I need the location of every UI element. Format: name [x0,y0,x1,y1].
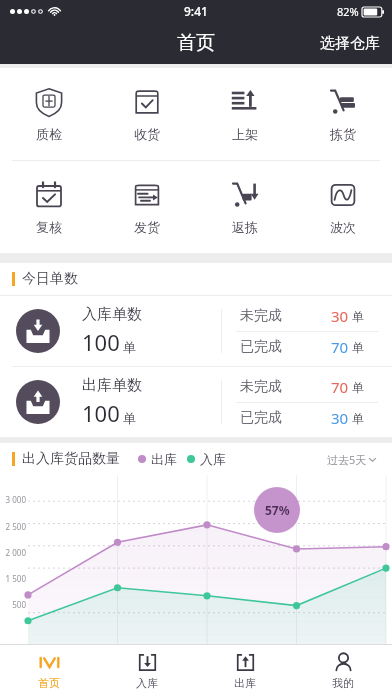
button[interactable]: 发货 [98,161,196,253]
staticText: 已完成 [240,338,282,356]
button[interactable]: 入库 [98,645,196,696]
staticText: 波次 [330,219,356,235]
button[interactable]: 复核 [0,161,98,253]
staticText: 70 [331,337,349,357]
staticText: 复核 [36,219,62,235]
staticText: 返拣 [232,219,258,235]
staticText: 100 [82,327,120,357]
staticText: 单 [123,410,136,426]
staticText: 单 [352,340,364,355]
button[interactable]: 波次 [294,161,392,253]
staticText: 发货 [134,219,160,235]
staticText: 9:41 [184,3,208,19]
staticText: 首页 [177,31,215,55]
staticText: 单 [123,339,136,355]
button[interactable]: 出库 [196,645,294,696]
staticText: 2 500 [0,521,26,532]
staticText: 单 [352,309,364,324]
staticText: 过去5天 [327,452,367,467]
staticText: 入库 [200,451,226,467]
button[interactable]: 拣货 [294,68,392,160]
staticText: 我的 [332,676,354,690]
staticText: 出库 [151,451,177,467]
button[interactable]: 入库单数 [0,296,392,366]
staticText: 500 [0,599,26,610]
staticText: 未完成 [240,378,282,396]
staticText: 70 [331,377,349,397]
button[interactable]: 出库单数 [0,367,392,437]
button[interactable]: 上架 [196,68,294,160]
staticText: 出库 [234,676,256,690]
staticText: 选择仓库 [320,34,380,53]
staticText: 30 [331,408,349,428]
staticText: 未完成 [240,307,282,325]
staticText: 上架 [232,126,258,142]
button[interactable]: 首页 [0,645,98,696]
staticText: 100 [82,398,120,428]
staticText: 入库单数 [82,305,142,324]
staticText: 入库 [136,676,158,690]
staticText: 首页 [38,676,60,690]
button[interactable]: 我的 [294,645,392,696]
staticText: 3 000 [0,494,26,505]
staticText: 2 000 [0,547,26,558]
staticText: 1 500 [0,573,26,584]
staticText: 30 [331,306,349,326]
button[interactable]: 返拣 [196,161,294,253]
button[interactable]: 过去5天 [323,448,380,471]
staticText: 拣货 [330,126,356,142]
staticText: 单 [352,411,364,426]
staticText: 82% [337,4,359,19]
staticText: 收货 [134,126,160,142]
button[interactable]: 收货 [98,68,196,160]
button[interactable]: 选择仓库 [308,26,392,61]
staticText: 单 [352,380,364,395]
staticText: 今日单数 [22,270,78,288]
button[interactable]: 质检 [0,68,98,160]
staticText: 出入库货品数量 [22,450,120,468]
staticText: 出库单数 [82,376,142,395]
staticText: 已完成 [240,409,282,427]
staticText: 质检 [36,126,62,142]
staticText: 57% [265,502,290,518]
